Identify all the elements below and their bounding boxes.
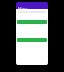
staticText: Messages — [18, 6, 29, 17]
